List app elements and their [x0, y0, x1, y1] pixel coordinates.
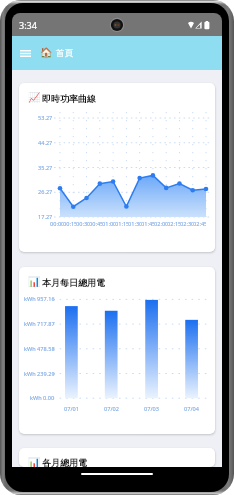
- button[interactable]: Menu: [14, 42, 36, 64]
- staticText: 07/01: [64, 405, 79, 413]
- staticText: 26.27: [38, 188, 53, 196]
- staticText: 02:15: [167, 220, 180, 228]
- staticText: 07/02: [104, 405, 119, 413]
- staticText: 首頁: [56, 48, 73, 59]
- staticText: kWh 957.16: [24, 295, 55, 303]
- staticText: 07/04: [184, 405, 199, 413]
- staticText: kWh 239.29: [24, 370, 55, 378]
- staticText: 00:30: [76, 220, 89, 228]
- staticText: 35.27: [38, 164, 53, 172]
- button[interactable]: 📈: [19, 83, 215, 252]
- staticText: 01:15: [115, 220, 128, 228]
- staticText: 02:30: [180, 220, 193, 228]
- staticText: 01:30: [128, 220, 141, 228]
- button[interactable]: 📊: [19, 448, 215, 467]
- staticText: 📈: [28, 92, 41, 104]
- staticText: 🏠: [40, 47, 53, 59]
- staticText: 02:45: [193, 220, 206, 228]
- staticText: 00:45: [89, 220, 102, 228]
- staticText: 3:34: [19, 19, 37, 31]
- staticText: 44.27: [38, 139, 53, 147]
- staticText: 02:00: [154, 220, 167, 228]
- staticText: kWh 478.58: [24, 345, 55, 353]
- staticText: kWh 717.87: [24, 320, 55, 328]
- staticText: 各月總用電: [42, 457, 87, 467]
- staticText: 00:00: [50, 220, 63, 228]
- staticText: 01:00: [102, 220, 115, 228]
- staticText: 00:15: [63, 220, 76, 228]
- staticText: 本月每日總用電: [42, 277, 105, 288]
- staticText: kWh 0.00: [30, 394, 55, 402]
- staticText: 即時功率曲線: [42, 93, 96, 104]
- staticText: 17.27: [38, 213, 53, 221]
- staticText: 07/03: [144, 405, 159, 413]
- button[interactable]: 📊: [19, 267, 215, 434]
- staticText: 01:45: [141, 220, 154, 228]
- staticText: 53.27: [38, 114, 53, 122]
- staticText: 📊: [28, 457, 41, 467]
- staticText: 📊: [28, 276, 41, 288]
